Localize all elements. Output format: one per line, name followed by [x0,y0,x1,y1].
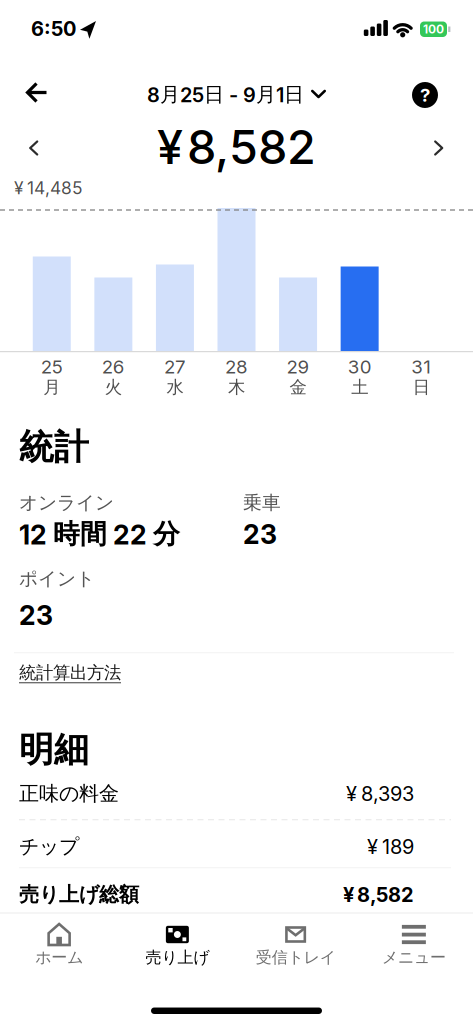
staticText: ¥ 189 [367,835,414,858]
staticText: ¥ 8,393 [346,782,414,805]
button[interactable]: 8月25日 - 9月1日 [147,71,326,117]
staticText: 受信トレイ [256,948,336,967]
staticText: 日 [413,377,430,398]
button[interactable]: 30 [329,356,390,397]
button[interactable]: 31 [390,356,452,397]
staticText: 統計 [19,426,89,468]
staticText: 30 [348,356,372,378]
button[interactable]: Previous week [29,140,39,155]
button[interactable]: 29 [267,356,329,397]
staticText: 27 [164,356,186,378]
staticText: 統計算出方法 [19,662,121,683]
staticText: 売り上げ [145,948,209,967]
staticText: ¥ 14,485 [14,178,83,198]
button[interactable]: Next week [434,140,444,155]
staticText: 100 [423,22,444,36]
staticText: 乗車 [243,491,281,514]
staticText: 8月25日 - 9月1日 [147,82,304,107]
staticText: ? [420,84,430,106]
button[interactable]: メニュー [355,922,473,965]
staticText: 金 [290,377,307,398]
button[interactable]: 26 [83,356,144,397]
button[interactable]: Back [14,70,58,114]
button[interactable]: 受信トレイ [236,922,355,965]
staticText: オンライン [19,491,114,514]
button[interactable]: 28 [206,356,267,397]
staticText: 売り上げ総額 [19,882,139,907]
staticText: ¥ 8,582 [343,883,414,906]
staticText: 25 [41,356,63,378]
button[interactable] [118,922,236,965]
staticText: 12 時間 22 分 [19,518,180,551]
staticText: メニュー [382,948,446,967]
staticText: 月 [43,377,60,398]
staticText: 土 [351,377,368,398]
staticText: 6:50 [31,17,76,41]
staticText: 23 [243,518,277,550]
button[interactable]: 25 [21,356,83,397]
staticText: ポイント [19,567,95,590]
staticText: 29 [287,356,310,378]
staticText: 木 [228,377,245,398]
staticText: チップ [19,834,79,859]
button[interactable]: ホーム [0,922,118,965]
staticText: 31 [411,356,431,378]
staticText: 26 [102,356,125,378]
staticText: 水 [166,377,183,398]
staticText: 23 [19,599,53,631]
staticText: 火 [105,377,122,398]
staticText: 正味の料金 [19,781,119,806]
button[interactable]: 統計算出方法 [19,659,121,686]
staticText: 明細 [19,728,89,771]
staticText: 28 [225,356,248,378]
staticText: ¥ 8,582 [157,119,316,175]
button[interactable]: 27 [144,356,206,397]
button[interactable]: Help [412,82,438,108]
staticText: ホーム [35,948,83,967]
